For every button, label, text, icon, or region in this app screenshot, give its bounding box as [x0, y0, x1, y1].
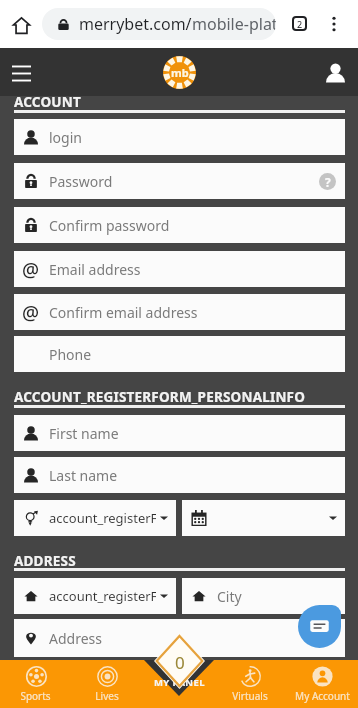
button[interactable]: account_registerFormXX — [14, 500, 176, 536]
button[interactable]: login — [14, 119, 345, 155]
button[interactable]: Menu — [8, 60, 34, 86]
button[interactable]: @ — [14, 294, 345, 330]
button[interactable]: Lives — [71, 660, 142, 708]
button[interactable]: Tabs — [287, 11, 312, 36]
button[interactable]: @ — [14, 251, 345, 287]
staticText: mb — [171, 65, 189, 80]
staticText: ADDRESS — [14, 552, 76, 570]
button[interactable]: Password — [14, 163, 345, 199]
staticText: 0 — [175, 651, 185, 674]
button[interactable]: Home — [8, 12, 34, 38]
staticText: Last name — [49, 466, 345, 485]
staticText: First name — [49, 424, 345, 443]
staticText: Password — [49, 172, 319, 191]
button[interactable]: Confirm password — [14, 207, 345, 243]
button[interactable]: More options — [321, 11, 346, 36]
button[interactable]: Phone — [14, 336, 345, 372]
button[interactable]: Sports — [0, 660, 71, 708]
button[interactable]: Virtuals — [214, 660, 286, 708]
staticText: @ — [22, 257, 40, 281]
button[interactable]: merrybet home — [163, 56, 196, 89]
button[interactable]: Last name — [14, 457, 345, 493]
staticText: @ — [22, 300, 40, 324]
staticText: Phone — [49, 345, 345, 364]
staticText: Virtuals — [232, 689, 268, 703]
staticText: Sports — [20, 689, 51, 703]
button[interactable]: Bet slip — [144, 660, 214, 696]
button[interactable]: Chat with support — [298, 605, 341, 648]
staticText: ACCOUNT — [14, 93, 81, 111]
staticText: account_registerFormXX — [49, 587, 156, 605]
staticText: MY PANEL — [154, 676, 205, 689]
button[interactable]: First name — [14, 415, 345, 451]
staticText: ? — [325, 174, 331, 190]
staticText: My Account — [295, 689, 350, 703]
staticText: Address — [49, 629, 345, 648]
staticText: login — [49, 128, 345, 147]
staticText: Confirm password — [49, 216, 345, 235]
staticText: ACCOUNT_REGISTERFORM_PERSONALINFO — [14, 388, 306, 406]
button[interactable]: My Account — [286, 660, 358, 708]
staticText: Confirm email address — [49, 303, 345, 322]
staticText: Lives — [95, 689, 119, 703]
staticText: account_registerFormXX — [49, 509, 156, 527]
staticText: Email address — [49, 260, 345, 279]
staticText: merrybet.com/ — [79, 13, 192, 35]
button[interactable]: Address — [14, 619, 345, 657]
staticText: mobile-platfo — [192, 13, 276, 35]
button[interactable]: merrybet.com/ — [42, 8, 276, 40]
button[interactable]: account_registerFormXX — [14, 578, 176, 614]
button[interactable]: Bet slip, 0 selections — [154, 633, 205, 689]
button[interactable] — [182, 500, 345, 536]
button[interactable]: Account — [322, 59, 348, 85]
button[interactable]: City — [182, 578, 345, 614]
staticText: City — [217, 587, 345, 606]
staticText: 2 — [297, 18, 303, 29]
